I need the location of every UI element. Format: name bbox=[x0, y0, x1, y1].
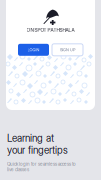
staticText: live classes bbox=[7, 167, 29, 172]
staticText: your fingertips bbox=[7, 144, 68, 156]
button[interactable]: LOGIN bbox=[18, 44, 49, 56]
staticText: ON SPOT PATHSHALA bbox=[26, 27, 74, 33]
staticText: Quick login for seamless access to bbox=[7, 161, 76, 167]
staticText: Learning at bbox=[7, 132, 54, 144]
button[interactable]: SIGN UP bbox=[52, 44, 83, 56]
staticText: LOGIN bbox=[27, 47, 39, 52]
staticText: SIGN UP bbox=[60, 47, 75, 52]
